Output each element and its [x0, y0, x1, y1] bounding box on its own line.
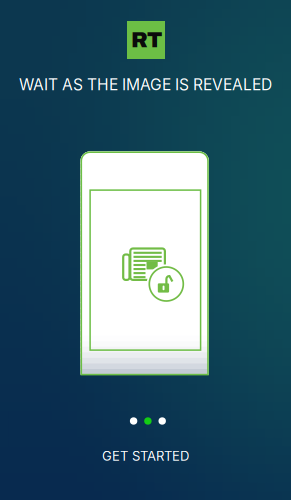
button[interactable]: RT [127, 21, 165, 59]
staticText: GET STARTED [102, 448, 189, 464]
button[interactable]: GET STARTED [0, 446, 291, 466]
staticText: RT [131, 28, 162, 52]
staticText: WAIT AS THE IMAGE IS REVEALED [19, 75, 272, 94]
